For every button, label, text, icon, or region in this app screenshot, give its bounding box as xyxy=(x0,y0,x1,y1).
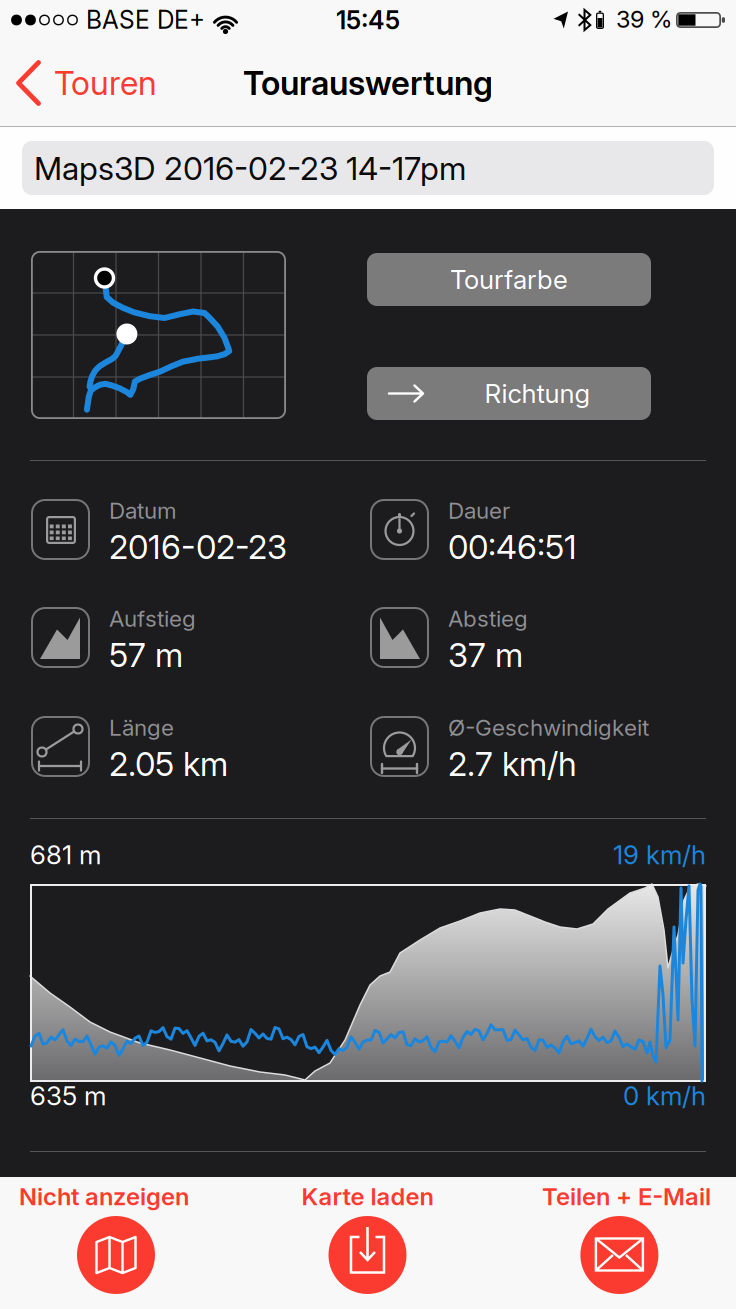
staticText: Ø-Geschwindigkeit xyxy=(448,714,649,741)
button[interactable]: Karte laden xyxy=(245,1177,490,1309)
staticText: Abstieg xyxy=(448,605,528,632)
staticText: Richtung xyxy=(484,378,590,409)
staticText: 2.7 km/h xyxy=(448,744,577,784)
button[interactable]: Maps3D 2016-02-23 14-17pm xyxy=(22,141,714,195)
staticText: Länge xyxy=(109,714,174,741)
staticText: Dauer xyxy=(448,497,510,524)
staticText: 0 km/h xyxy=(623,1080,706,1111)
staticText: BASE DE+ xyxy=(86,5,205,35)
staticText: Teilen + E-Mail xyxy=(542,1182,711,1211)
button[interactable]: Richtung xyxy=(367,367,651,420)
staticText: 2016-02-23 xyxy=(109,527,287,567)
staticText: Tourfarbe xyxy=(450,264,568,295)
staticText: 635 m xyxy=(30,1080,106,1111)
staticText: Karte laden xyxy=(301,1182,433,1211)
staticText: 681 m xyxy=(30,839,101,870)
staticText: 57 m xyxy=(109,635,183,675)
staticText: Touren xyxy=(54,63,157,103)
button[interactable]: Back xyxy=(0,40,180,126)
staticText: Maps3D 2016-02-23 14-17pm xyxy=(34,149,466,188)
button[interactable]: Teilen + E-Mail xyxy=(490,1177,735,1309)
staticText: 39 % xyxy=(616,5,672,33)
staticText: Nicht anzeigen xyxy=(19,1182,189,1211)
staticText: 15:45 xyxy=(336,5,400,35)
staticText: Datum xyxy=(109,497,177,524)
staticText: 37 m xyxy=(448,635,523,675)
button[interactable]: Nicht anzeigen xyxy=(0,1177,245,1309)
staticText: 2.05 km xyxy=(109,744,228,784)
staticText: Tourauswertung xyxy=(243,63,493,103)
button[interactable]: Tourfarbe xyxy=(367,253,651,306)
staticText: 19 km/h xyxy=(613,839,706,870)
staticText: Aufstieg xyxy=(109,605,196,632)
staticText: 00:46:51 xyxy=(448,527,577,567)
